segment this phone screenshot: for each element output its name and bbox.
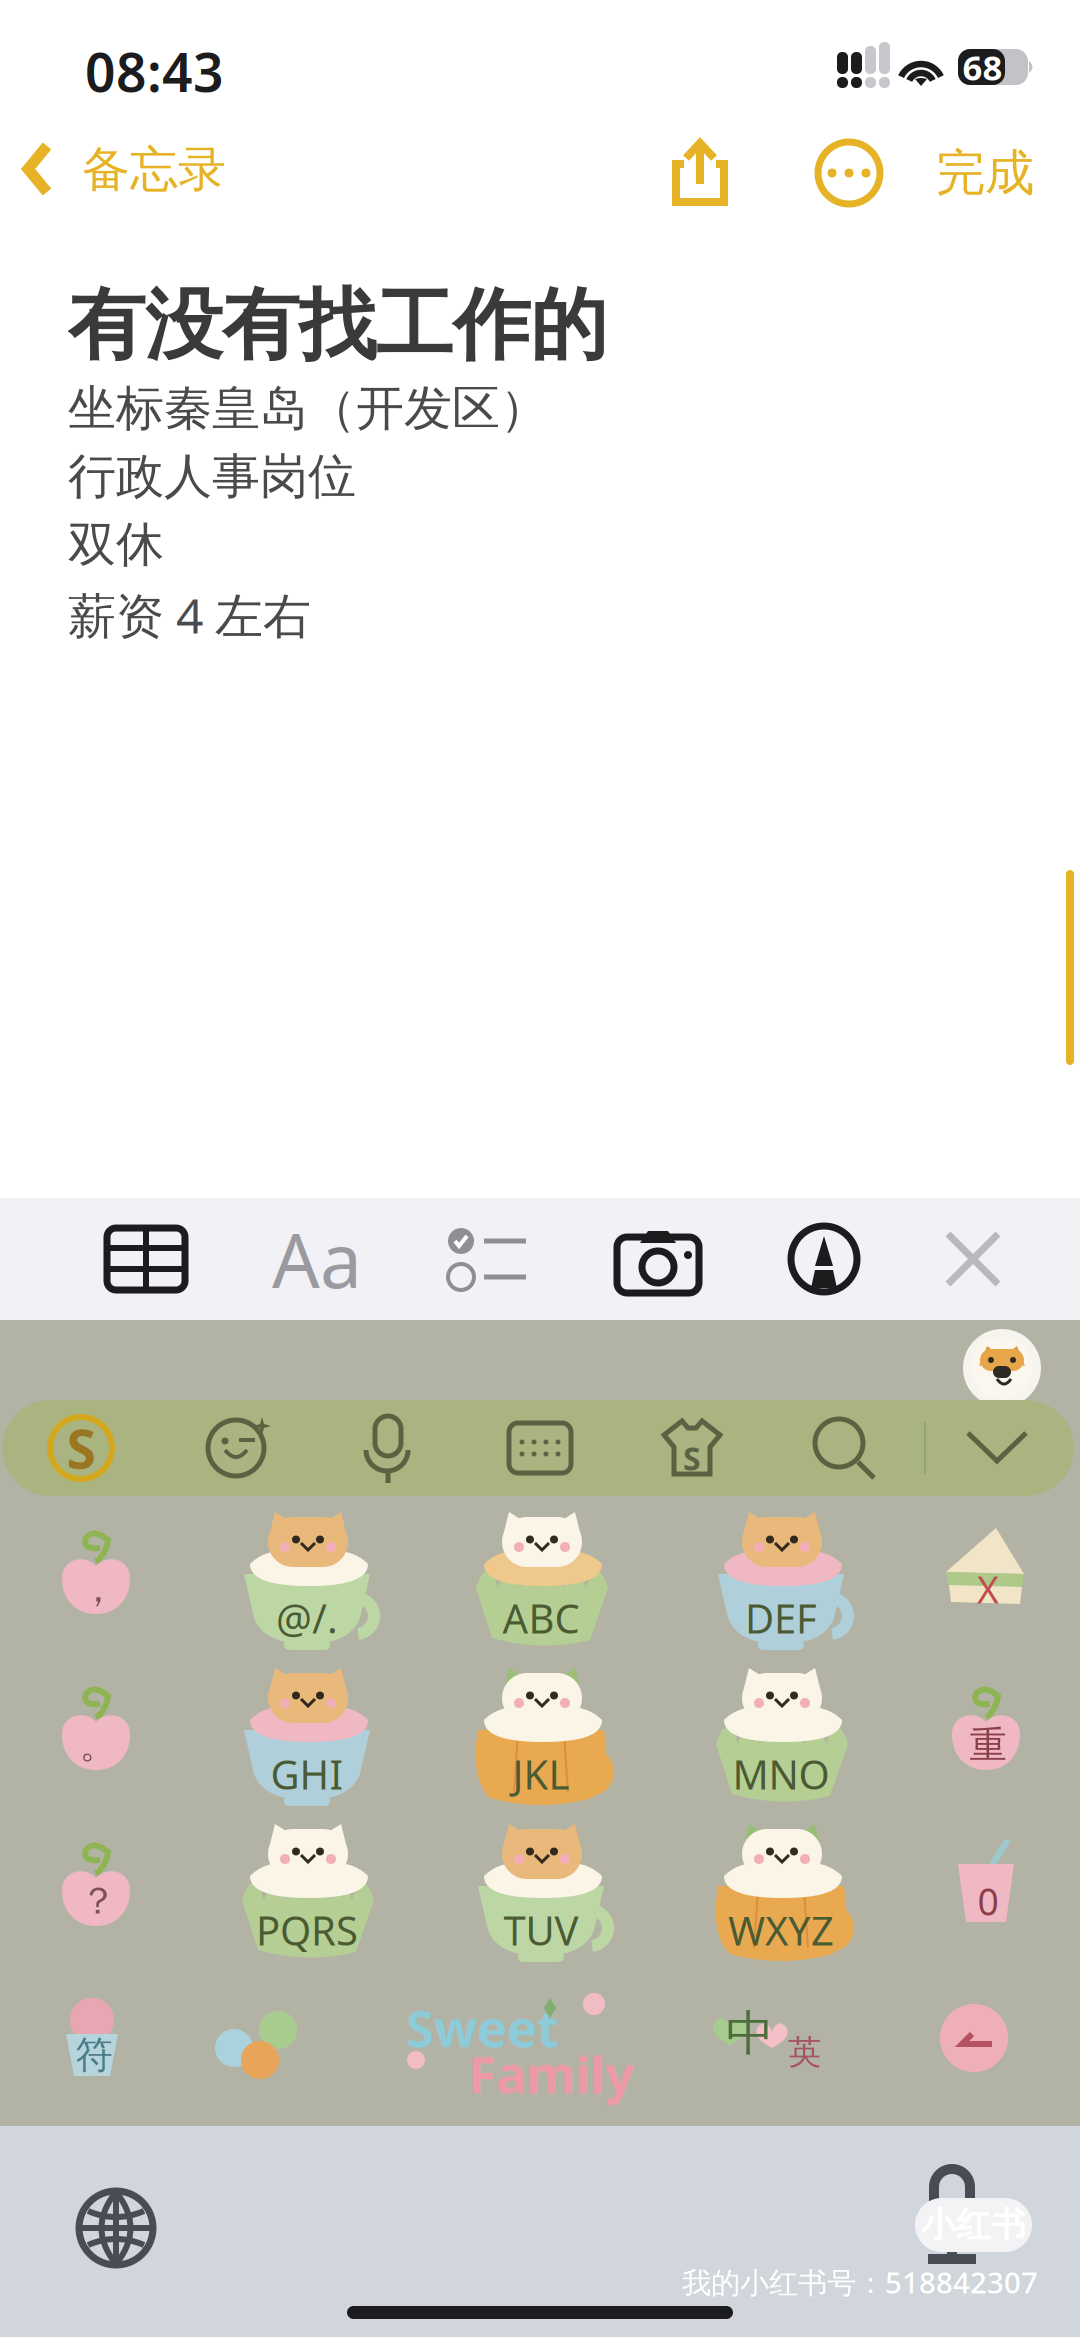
button[interactable]: TUV — [462, 1814, 632, 1966]
button[interactable]: More — [794, 118, 904, 228]
button[interactable]: GHI — [228, 1658, 398, 1810]
staticText: 薪资 4 左右 — [68, 583, 311, 647]
button[interactable]: ？ — [38, 1822, 158, 1972]
staticText: ABC — [502, 1591, 579, 1644]
button[interactable] — [198, 1980, 318, 2130]
staticText: Aa — [272, 1209, 362, 1309]
button[interactable]: Hide toolbar — [920, 1400, 1074, 1496]
staticText: 中 — [726, 2004, 774, 2063]
button[interactable]: Dictate — [907, 2156, 1017, 2286]
button[interactable]: Sweet — [398, 1988, 638, 2098]
button[interactable]: ， — [38, 1510, 158, 1660]
staticText: Sweet — [406, 1994, 559, 2061]
staticText: WXYZ — [728, 1903, 834, 1956]
button[interactable]: WXYZ — [702, 1814, 872, 1966]
button[interactable]: Emoji — [160, 1400, 312, 1496]
staticText: 重 — [969, 1722, 1006, 1768]
staticText: 我的小红书号：518842307 — [682, 2262, 1038, 2301]
staticText: Family — [468, 2040, 634, 2107]
button[interactable]: Store — [2, 1400, 160, 1496]
button[interactable]: X — [928, 1510, 1048, 1660]
button[interactable]: 符 — [34, 1976, 154, 2126]
staticText: 英 — [788, 2032, 821, 2073]
button[interactable]: 0 — [928, 1822, 1048, 1972]
staticText: 双休 — [68, 515, 164, 574]
staticText: 完成 — [936, 143, 1034, 203]
staticText: 备忘录 — [82, 140, 226, 199]
staticText: S — [66, 1413, 95, 1483]
button[interactable]: Aa — [237, 1198, 397, 1320]
button[interactable]: 。 — [38, 1666, 158, 1816]
button[interactable]: Next keyboard — [61, 2173, 171, 2283]
staticText: PQRS — [256, 1903, 358, 1956]
staticText: 68 — [962, 44, 1002, 90]
staticText: 有没有找工作的 — [68, 278, 607, 373]
staticText: 。 — [79, 1722, 116, 1768]
staticText: GHI — [270, 1747, 343, 1800]
staticText: ？ — [79, 1878, 116, 1924]
button[interactable]: Voice input — [312, 1400, 464, 1496]
staticText: JKL — [512, 1747, 569, 1800]
staticText: 小红书 — [921, 2204, 1026, 2246]
button[interactable]: Keyboard settings — [464, 1400, 616, 1496]
button[interactable]: Close keyboard — [893, 1198, 1053, 1320]
staticText: 符 — [75, 2032, 112, 2078]
button[interactable]: @/. — [228, 1502, 398, 1654]
staticText: DEF — [745, 1591, 817, 1644]
button[interactable]: DEF — [702, 1502, 872, 1654]
staticText: X — [977, 1564, 999, 1614]
staticText: 0 — [977, 1876, 998, 1926]
button[interactable]: Table — [66, 1198, 226, 1320]
staticText: 坐标秦皇岛（开发区） — [68, 379, 548, 438]
button[interactable]: Markup — [744, 1198, 904, 1320]
button[interactable]: 备忘录 — [0, 110, 260, 220]
staticText: @/. — [276, 1591, 338, 1644]
button[interactable]: JKL — [462, 1658, 632, 1810]
button[interactable]: Share — [645, 118, 755, 228]
button[interactable] — [688, 1972, 808, 2122]
button[interactable]: Search — [768, 1400, 920, 1496]
button[interactable]: Themes — [616, 1400, 768, 1496]
button[interactable]: ABC — [462, 1502, 632, 1654]
button[interactable] — [916, 1976, 1036, 2126]
staticText: ， — [79, 1566, 116, 1612]
button[interactable]: MNO — [702, 1658, 872, 1810]
button[interactable]: 完成 — [905, 118, 1065, 228]
button[interactable]: 重 — [928, 1666, 1048, 1816]
button[interactable]: Camera — [578, 1198, 738, 1320]
staticText: S — [683, 1437, 701, 1479]
staticText: 08:43 — [85, 36, 224, 107]
button[interactable]: PQRS — [228, 1814, 398, 1966]
staticText: TUV — [503, 1903, 578, 1956]
staticText: 行政人事岗位 — [68, 447, 356, 506]
button[interactable]: Checklist — [407, 1198, 567, 1320]
staticText: MNO — [732, 1747, 829, 1800]
